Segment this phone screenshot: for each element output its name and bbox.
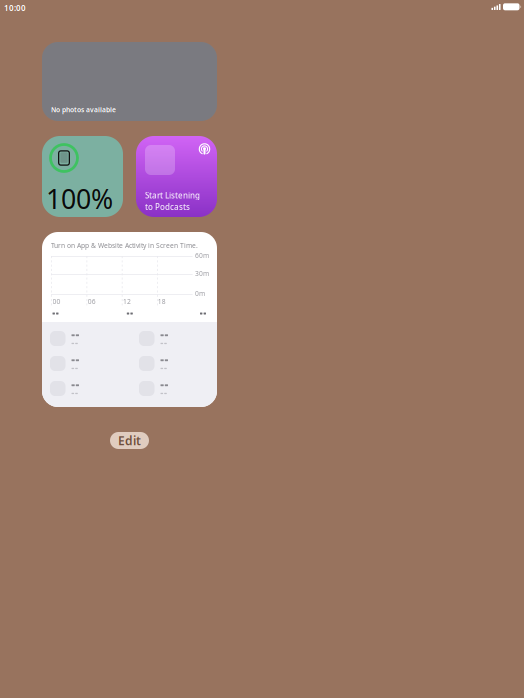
staticText: Start Listening <box>145 190 200 201</box>
staticText: 18 <box>158 297 166 306</box>
staticText: 0m <box>195 289 205 298</box>
staticText: to Podcasts <box>145 202 190 212</box>
staticText: 10:00 <box>4 2 26 13</box>
button[interactable]: Edit <box>110 432 149 449</box>
staticText: Turn on App & Website Activity in Screen… <box>51 241 198 250</box>
button[interactable]: 100% <box>42 136 123 217</box>
staticText: 60m <box>195 251 209 260</box>
staticText: Edit <box>118 432 141 448</box>
staticText: 100% <box>46 181 113 216</box>
staticText: 30m <box>195 269 209 278</box>
button[interactable]: No photos available <box>42 42 217 121</box>
staticText: 00 <box>52 297 60 306</box>
button[interactable]: Turn on App & Website Activity in Screen… <box>42 232 217 407</box>
staticText: No photos available <box>51 105 116 114</box>
staticText: 06 <box>88 297 96 306</box>
staticText: 12 <box>123 297 131 306</box>
button[interactable]: Start Listening <box>136 136 217 217</box>
